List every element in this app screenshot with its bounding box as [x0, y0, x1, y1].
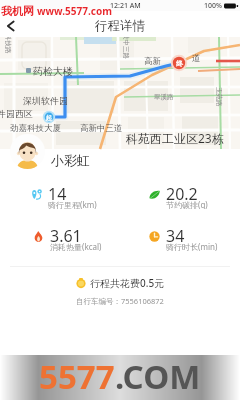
staticText: 3.61 — [50, 225, 82, 247]
button[interactable]: 34 — [143, 223, 224, 255]
staticText: 12:21 AM — [110, 1, 141, 11]
staticText: 骑行时长(min) — [166, 241, 218, 251]
staticText: 科苑西工业区23栋 — [126, 130, 224, 146]
staticText: 行程共花费0.5元 — [90, 276, 165, 290]
staticText: 20.2 — [166, 183, 198, 205]
staticText: 起 — [46, 114, 52, 122]
button[interactable]: 分享行程 — [100, 379, 140, 392]
staticText: 分享行程 — [100, 379, 140, 392]
button[interactable]: User avatar — [10, 134, 45, 169]
staticText: www.5577.com — [37, 4, 112, 18]
staticText: 技中三路 — [122, 33, 130, 59]
staticText: 终 — [176, 59, 183, 68]
button[interactable]: 20.2 — [143, 181, 214, 213]
staticText: 深圳软件园 — [23, 95, 68, 106]
staticText: 自行车编号：7556106872 — [76, 296, 164, 306]
staticText: 节约碳排(g) — [166, 199, 208, 209]
button[interactable]: 3.61 — [27, 223, 108, 255]
staticText: 行程详情 — [95, 18, 145, 34]
staticText: .COM — [115, 354, 201, 399]
staticText: 14 — [48, 183, 67, 205]
staticText: 消耗热量(kcal) — [50, 241, 102, 251]
staticText: 道 — [192, 53, 201, 64]
staticText: 100% — [204, 1, 222, 11]
staticText: 高新 — [144, 56, 161, 67]
staticText: 科技路 — [4, 34, 12, 54]
staticText: 药检大楼 — [33, 65, 73, 78]
staticText: 骑行里程(km) — [48, 199, 97, 209]
staticText: 我机网 — [1, 4, 34, 18]
staticText: 件园西区 — [0, 108, 33, 119]
staticText: 高新中三道 — [80, 123, 123, 134]
button[interactable]: Back — [0, 11, 22, 37]
staticText: 玉苑路 — [215, 87, 223, 107]
staticText: 34 — [166, 225, 185, 247]
staticText: 劲嘉科技大厦 — [10, 123, 61, 134]
staticText: 小彩虹 — [51, 152, 90, 168]
button[interactable]: 14 — [25, 181, 103, 213]
staticText: 翠溪路 — [154, 93, 174, 101]
staticText: 5577 — [39, 354, 115, 399]
